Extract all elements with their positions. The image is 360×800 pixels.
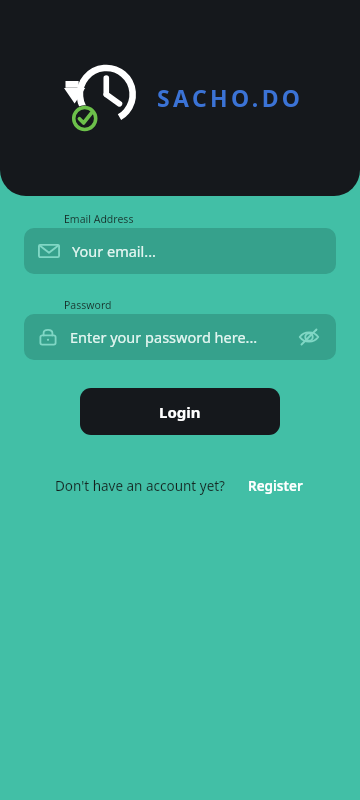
button[interactable]: Your email... bbox=[24, 228, 336, 274]
staticText: Login bbox=[159, 402, 201, 422]
staticText: Don't have an account yet? bbox=[55, 477, 225, 495]
staticText: Register bbox=[248, 477, 303, 495]
staticText: SACHO.DO bbox=[157, 82, 304, 113]
button[interactable]: Register bbox=[245, 472, 306, 500]
staticText: Your email... bbox=[72, 241, 156, 261]
button[interactable]: Login bbox=[80, 388, 280, 435]
staticText: Enter your password here... bbox=[70, 327, 258, 347]
staticText: Password bbox=[64, 298, 112, 312]
staticText: Email Address bbox=[64, 212, 134, 226]
button[interactable]: Enter your password here... bbox=[24, 314, 336, 360]
button[interactable]: Show password bbox=[296, 324, 322, 350]
